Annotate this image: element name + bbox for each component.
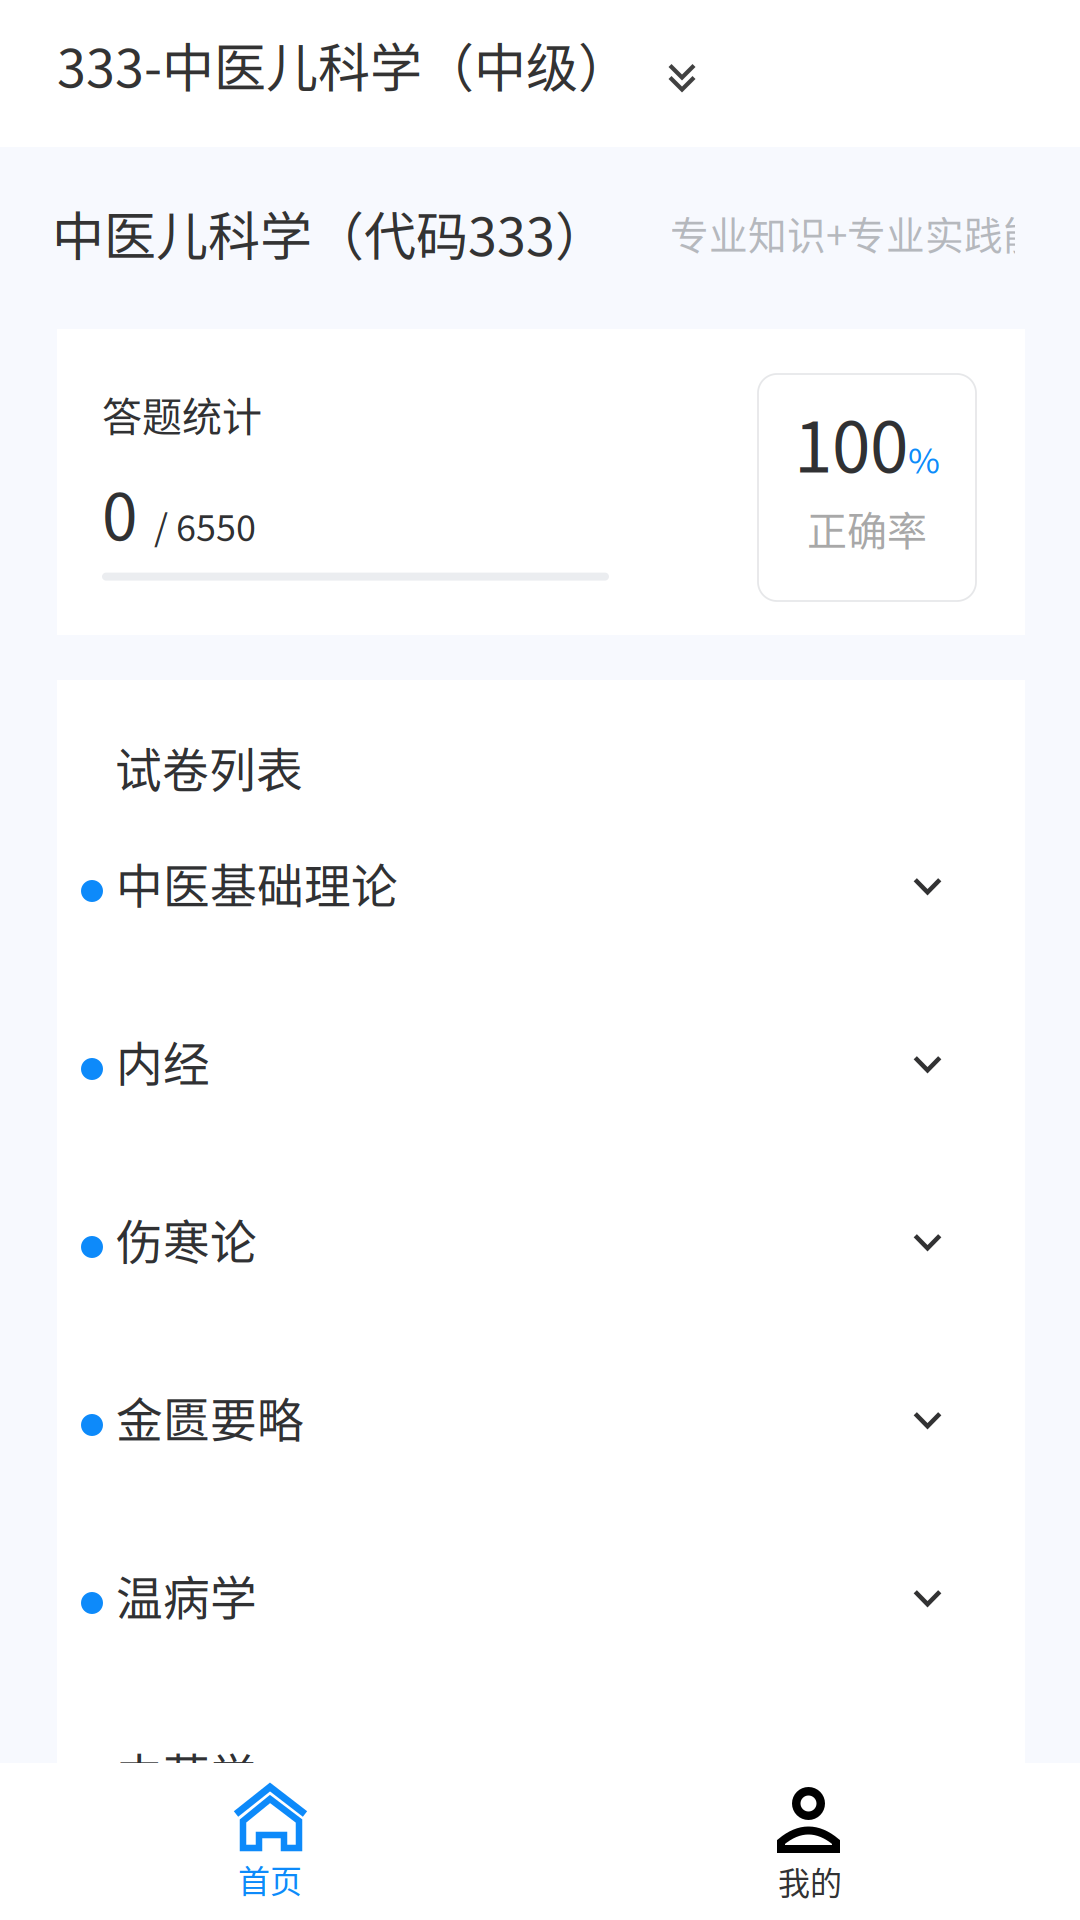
staticText: 专业知识+专业实践能力 bbox=[670, 205, 1080, 261]
staticText: 试卷列表 bbox=[115, 733, 303, 801]
staticText: 答题统计 bbox=[102, 385, 262, 443]
staticText: 温病学 bbox=[116, 1561, 257, 1629]
staticText: 中医基础理论 bbox=[116, 849, 398, 917]
button[interactable]: 内经 bbox=[0, 972, 1080, 1150]
staticText: 正确率 bbox=[807, 499, 927, 557]
staticText: 伤寒论 bbox=[116, 1205, 257, 1273]
staticText: 0 bbox=[102, 466, 138, 559]
button[interactable]: 首页 bbox=[0, 1763, 540, 1920]
staticText: 内经 bbox=[116, 1027, 210, 1095]
staticText: 333-中医儿科学（中级） bbox=[57, 27, 630, 102]
button[interactable]: 中医基础理论 bbox=[0, 794, 1080, 972]
button[interactable]: 333-中医儿科学（中级） bbox=[0, 0, 724, 138]
staticText: 中医儿科学（代码333） bbox=[52, 195, 607, 271]
staticText: 中药学 bbox=[116, 1739, 257, 1807]
staticText: / 6550 bbox=[138, 499, 256, 552]
staticText: % bbox=[908, 433, 940, 483]
button[interactable]: 伤寒论 bbox=[0, 1150, 1080, 1328]
button[interactable]: 中药学 bbox=[0, 1684, 1080, 1862]
staticText: 100 bbox=[794, 392, 908, 492]
button[interactable]: 金匮要略 bbox=[0, 1328, 1080, 1506]
staticText: 首页 bbox=[238, 1856, 302, 1902]
staticText: 金匮要略 bbox=[116, 1383, 304, 1451]
button[interactable]: 我的 bbox=[540, 1763, 1080, 1920]
button[interactable]: 温病学 bbox=[0, 1506, 1080, 1684]
staticText: 我的 bbox=[778, 1858, 842, 1904]
